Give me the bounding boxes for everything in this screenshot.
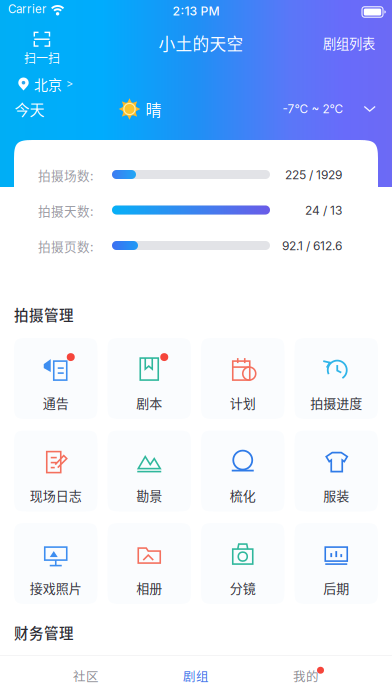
button[interactable]: 社区 (56, 656, 116, 696)
staticText: 服装 (323, 486, 349, 504)
button[interactable]: 我的 (276, 656, 336, 696)
staticText: 北京 (34, 74, 62, 94)
staticText: 225 / 1929 (285, 168, 342, 182)
staticText: -7°C ~ 2°C (282, 102, 343, 116)
staticText: 扫一扫 (24, 49, 60, 66)
staticText: 2:13 PM (172, 4, 219, 18)
staticText: 勘景 (136, 486, 162, 504)
button[interactable]: 梳化 (201, 430, 284, 511)
staticText: 剧组列表 (323, 33, 375, 53)
staticText: 分镜 (230, 578, 256, 597)
button[interactable]: 后期 (294, 523, 378, 604)
staticText: 92.1 / 612.6 (282, 239, 342, 253)
staticText: 相册 (136, 578, 162, 597)
staticText: 社区 (73, 667, 99, 685)
button[interactable]: 剧组列表 (314, 29, 384, 57)
staticText: 晴 (145, 97, 161, 121)
staticText: 拍摄天数: (38, 201, 94, 220)
button[interactable]: 分镜 (201, 523, 284, 604)
button[interactable]: 剧组 (166, 656, 226, 696)
button[interactable]: 计划 (201, 338, 284, 419)
button[interactable]: 勘景 (107, 430, 191, 511)
staticText: 今天 (14, 98, 44, 120)
staticText: 拍摄场数: (38, 166, 94, 184)
staticText: 接戏照片 (30, 578, 82, 597)
staticText: 梳化 (230, 486, 256, 504)
button[interactable]: 剧本 (107, 338, 191, 419)
button[interactable]: 接戏照片 (14, 523, 97, 604)
button[interactable]: 扫一扫 (11, 32, 73, 66)
staticText: > (66, 77, 73, 91)
staticText: Carrier (8, 2, 46, 16)
staticText: 24 / 13 (305, 203, 342, 218)
staticText: 计划 (230, 393, 256, 412)
staticText: 拍摄管理 (14, 304, 74, 325)
button[interactable]: 服装 (294, 430, 378, 511)
button[interactable]: 拍摄进度 (294, 338, 378, 419)
staticText: 剧本 (136, 393, 162, 412)
staticText: 拍摄进度 (310, 393, 362, 412)
staticText: 通告 (43, 393, 69, 412)
staticText: 我的 (293, 667, 319, 685)
button[interactable]: 相册 (107, 523, 191, 604)
staticText: 剧组 (183, 667, 209, 685)
staticText: 财务管理 (14, 622, 74, 643)
staticText: 小土的天空 (158, 31, 243, 55)
button[interactable]: 通告 (14, 338, 97, 419)
staticText: 后期 (323, 578, 349, 597)
button[interactable]: 现场日志 (14, 430, 97, 511)
staticText: 现场日志 (30, 486, 82, 504)
staticText: 拍摄页数: (38, 237, 94, 255)
